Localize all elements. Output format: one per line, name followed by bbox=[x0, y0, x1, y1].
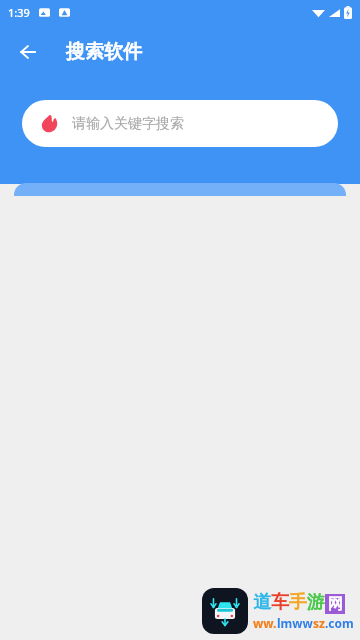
staticText: 车 bbox=[271, 591, 289, 614]
staticText: 搜索软件 bbox=[66, 40, 142, 64]
button[interactable]: 请输入关键字搜索 bbox=[22, 100, 338, 147]
staticText: 网 bbox=[328, 595, 343, 614]
staticText: 请输入关键字搜索 bbox=[72, 115, 184, 133]
staticText: .com bbox=[325, 615, 354, 631]
button[interactable]: Back bbox=[6, 30, 50, 74]
staticText: lmww bbox=[277, 615, 313, 631]
staticText: sz bbox=[313, 615, 325, 631]
staticText: 1:39 bbox=[8, 5, 30, 20]
staticText: 游 bbox=[307, 591, 325, 614]
staticText: ww. bbox=[253, 615, 277, 631]
staticText: 道 bbox=[253, 591, 271, 614]
staticText: 手 bbox=[289, 591, 307, 614]
